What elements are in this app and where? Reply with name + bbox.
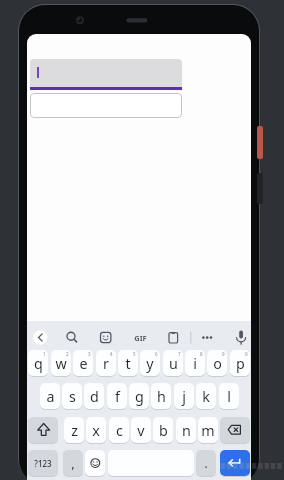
button[interactable] bbox=[30, 93, 182, 118]
staticText: r bbox=[103, 354, 109, 373]
staticText: b bbox=[159, 421, 168, 440]
button[interactable]: r bbox=[96, 350, 116, 376]
button[interactable] bbox=[62, 328, 82, 348]
button[interactable] bbox=[163, 328, 183, 348]
staticText: x bbox=[92, 421, 100, 440]
staticText: 3 bbox=[88, 351, 91, 357]
button[interactable]: s bbox=[62, 383, 82, 409]
staticText: 4 bbox=[110, 351, 113, 357]
staticText: n bbox=[182, 421, 191, 440]
button[interactable]: y bbox=[140, 350, 160, 376]
button[interactable] bbox=[130, 328, 150, 348]
button[interactable]: n bbox=[176, 417, 196, 443]
staticText: f bbox=[115, 387, 120, 406]
staticText: m bbox=[201, 421, 215, 440]
staticText: ?123 bbox=[34, 458, 52, 469]
button[interactable]: , bbox=[63, 450, 83, 476]
staticText: 8 bbox=[200, 351, 203, 357]
button[interactable] bbox=[197, 328, 217, 348]
button[interactable] bbox=[28, 328, 48, 348]
button[interactable] bbox=[96, 328, 116, 348]
staticText: c bbox=[116, 421, 123, 440]
button[interactable]: p bbox=[230, 350, 250, 376]
button[interactable] bbox=[231, 328, 251, 348]
staticText: a bbox=[46, 387, 55, 406]
staticText: t bbox=[125, 354, 131, 373]
staticText: d bbox=[90, 387, 99, 406]
button[interactable]: j bbox=[174, 383, 194, 409]
staticText: l bbox=[227, 387, 231, 406]
button[interactable]: m bbox=[198, 417, 218, 443]
button[interactable]: t bbox=[118, 350, 138, 376]
staticText: q bbox=[34, 354, 43, 373]
button[interactable]: e bbox=[73, 350, 93, 376]
staticText: 5 bbox=[133, 351, 136, 357]
button[interactable]: g bbox=[129, 383, 149, 409]
button[interactable] bbox=[85, 450, 105, 476]
button[interactable]: l bbox=[219, 383, 239, 409]
staticText: 1 bbox=[43, 351, 46, 357]
staticText: y bbox=[146, 354, 154, 373]
staticText: e bbox=[79, 354, 88, 373]
staticText: z bbox=[71, 421, 78, 440]
button[interactable]: h bbox=[151, 383, 171, 409]
staticText: v bbox=[137, 421, 145, 440]
button[interactable]: v bbox=[131, 417, 151, 443]
button[interactable]: q bbox=[28, 350, 48, 376]
staticText: 0 bbox=[245, 351, 248, 357]
staticText: GIF bbox=[134, 333, 147, 343]
button[interactable] bbox=[28, 417, 58, 443]
staticText: h bbox=[157, 387, 166, 406]
button[interactable]: . bbox=[196, 450, 216, 476]
button[interactable]: o bbox=[207, 350, 227, 376]
staticText: s bbox=[69, 387, 76, 406]
staticText: i bbox=[193, 354, 197, 373]
staticText: p bbox=[236, 354, 245, 373]
button[interactable]: f bbox=[107, 383, 127, 409]
button[interactable]: a bbox=[40, 383, 60, 409]
button[interactable]: i bbox=[185, 350, 205, 376]
staticText: j bbox=[182, 387, 186, 406]
button[interactable]: u bbox=[163, 350, 183, 376]
button[interactable]: z bbox=[64, 417, 84, 443]
button[interactable]: d bbox=[84, 383, 104, 409]
button[interactable]: w bbox=[51, 350, 71, 376]
staticText: 6 bbox=[155, 351, 158, 357]
button[interactable] bbox=[30, 59, 182, 87]
button[interactable]: x bbox=[86, 417, 106, 443]
staticText: o bbox=[213, 354, 222, 373]
staticText: 7 bbox=[178, 351, 181, 357]
staticText: w bbox=[55, 354, 67, 373]
button[interactable]: ?123 bbox=[28, 450, 58, 476]
staticText: , bbox=[71, 454, 75, 472]
button[interactable]: c bbox=[109, 417, 129, 443]
button[interactable] bbox=[220, 417, 250, 443]
button[interactable]: k bbox=[196, 383, 216, 409]
staticText: u bbox=[169, 354, 178, 373]
staticText: . bbox=[204, 454, 208, 472]
staticText: 2 bbox=[66, 351, 69, 357]
staticText: 9 bbox=[222, 351, 225, 357]
button[interactable]: b bbox=[153, 417, 173, 443]
staticText: g bbox=[135, 387, 144, 406]
button[interactable] bbox=[220, 450, 250, 476]
staticText: k bbox=[202, 387, 210, 406]
